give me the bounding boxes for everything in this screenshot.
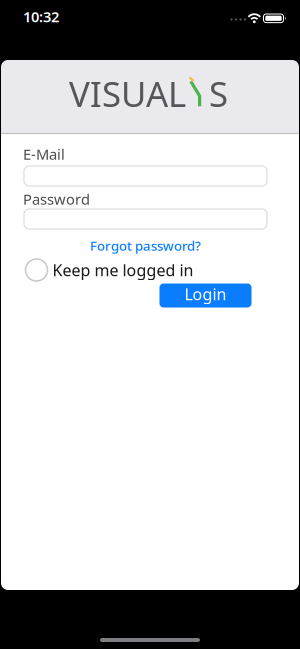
button[interactable]	[24, 209, 267, 229]
staticText: E-Mail	[23, 144, 65, 164]
staticText: Login	[184, 283, 226, 305]
button[interactable]: Keep me logged in	[25, 259, 193, 281]
button[interactable]: Forgot password?	[90, 240, 201, 251]
button[interactable]	[24, 166, 267, 186]
staticText: 10:32	[23, 7, 59, 26]
staticText: S	[209, 70, 228, 116]
staticText: Password	[23, 189, 90, 209]
staticText: VISUAL	[69, 70, 186, 116]
staticText: Keep me logged in	[52, 259, 193, 281]
staticText: Forgot password?	[90, 237, 201, 254]
button[interactable]: Login	[159, 283, 251, 307]
